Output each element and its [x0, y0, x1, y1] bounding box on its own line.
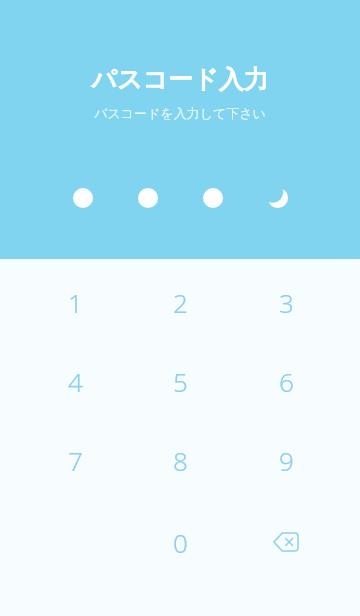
button[interactable]: Delete [236, 506, 336, 578]
button[interactable]: 0 [130, 506, 230, 578]
button[interactable]: 5 [130, 345, 230, 417]
staticText: 8 [173, 443, 188, 478]
staticText: 6 [279, 364, 294, 399]
button[interactable]: 2 [130, 266, 230, 338]
staticText: 0 [173, 525, 188, 560]
button[interactable]: 6 [236, 345, 336, 417]
button[interactable]: 4 [25, 345, 125, 417]
staticText: 4 [68, 364, 83, 399]
staticText: 7 [68, 443, 83, 478]
staticText: パスコード入力 [91, 64, 269, 95]
staticText: 2 [173, 285, 188, 320]
button[interactable]: 9 [236, 424, 336, 496]
staticText: パスコードを入力して下さい [94, 105, 266, 121]
staticText: 1 [68, 285, 83, 320]
button[interactable]: 7 [25, 424, 125, 496]
button[interactable]: 1 [25, 266, 125, 338]
staticText: 3 [279, 285, 294, 320]
button[interactable]: 8 [130, 424, 230, 496]
staticText: 9 [279, 443, 294, 478]
button[interactable]: 3 [236, 266, 336, 338]
staticText: 5 [173, 364, 188, 399]
